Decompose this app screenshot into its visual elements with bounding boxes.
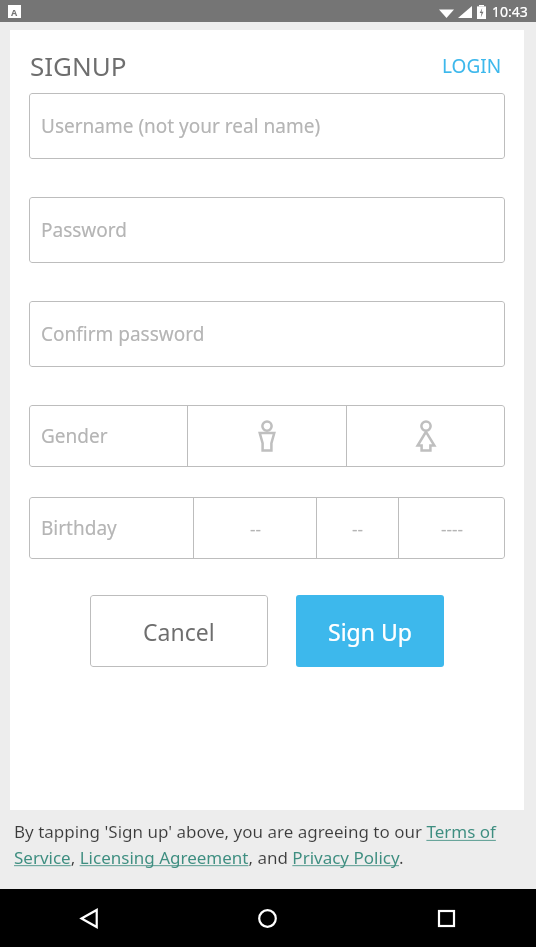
staticText: LOGIN: [442, 53, 502, 79]
button[interactable]: Confirm password: [29, 301, 505, 367]
button[interactable]: Username (not your real name): [29, 93, 505, 159]
button[interactable]: --: [317, 497, 398, 559]
button[interactable]: Birthday: [29, 497, 193, 559]
button[interactable]: --: [194, 497, 316, 559]
button[interactable]: ----: [399, 497, 505, 559]
staticText: Password: [41, 217, 127, 243]
staticText: Username (not your real name): [41, 113, 321, 139]
button[interactable]: Cancel: [90, 595, 268, 667]
staticText: Cancel: [143, 616, 215, 647]
staticText: SIGNUP: [30, 48, 127, 83]
button[interactable]: Password: [29, 197, 505, 263]
staticText: Gender: [41, 423, 108, 449]
staticText: --: [352, 517, 363, 540]
button[interactable]: Gender: [29, 405, 187, 467]
staticText: Birthday: [41, 515, 117, 541]
button[interactable]: Male: [188, 405, 346, 467]
staticText: Sign Up: [328, 616, 412, 647]
staticText: A: [11, 6, 18, 18]
button[interactable]: Back: [0, 889, 178, 947]
button[interactable]: Recent apps: [357, 889, 536, 947]
button[interactable]: By tapping 'Sign up' above, you are agre…: [14, 820, 522, 869]
button[interactable]: Home: [178, 889, 357, 947]
staticText: --: [250, 517, 261, 540]
staticText: ----: [441, 517, 463, 540]
staticText: By tapping 'Sign up' above, you are agre…: [14, 820, 522, 869]
button[interactable]: Female: [347, 405, 505, 467]
staticText: 10:43: [492, 2, 528, 21]
button[interactable]: Sign Up: [296, 595, 444, 667]
staticText: Confirm password: [41, 321, 205, 347]
button[interactable]: LOGIN: [438, 49, 506, 83]
